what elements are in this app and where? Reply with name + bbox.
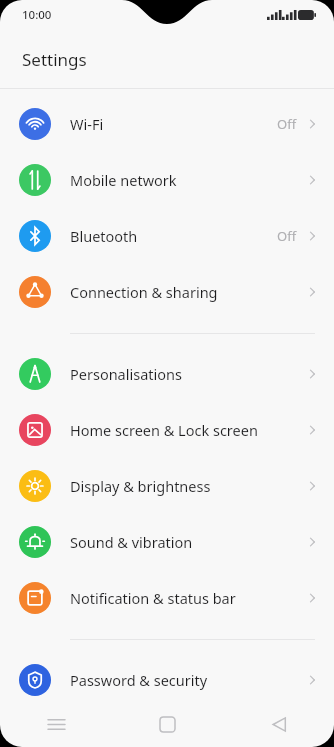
button[interactable]: Home — [112, 701, 223, 747]
staticText: Personalisations — [70, 364, 308, 384]
button[interactable]: Notification & status bar — [0, 570, 334, 626]
staticText: Home screen & Lock screen — [70, 420, 308, 440]
button[interactable]: Home screen & Lock screen — [0, 402, 334, 458]
staticText: Display & brightness — [70, 476, 308, 496]
staticText: Notification & status bar — [70, 588, 308, 608]
button[interactable]: Password & security — [0, 652, 334, 708]
staticText: Off — [277, 227, 297, 245]
staticText: Password & security — [70, 670, 308, 690]
staticText: Settings — [22, 48, 87, 71]
staticText: Connection & sharing — [70, 282, 308, 302]
staticText: Mobile network — [70, 170, 308, 190]
button[interactable]: Back — [223, 701, 334, 747]
staticText: Bluetooth — [70, 226, 277, 246]
button[interactable]: Sound & vibration — [0, 514, 334, 570]
button[interactable]: Wi-Fi — [0, 96, 334, 152]
button[interactable]: Display & brightness — [0, 458, 334, 514]
button[interactable]: Bluetooth — [0, 208, 334, 264]
staticText: Sound & vibration — [70, 532, 308, 552]
button[interactable]: Recent apps — [0, 701, 112, 747]
staticText: Off — [277, 115, 297, 133]
button[interactable]: Connection & sharing — [0, 264, 334, 320]
button[interactable]: Mobile network — [0, 152, 334, 208]
button[interactable]: Personalisations — [0, 346, 334, 402]
staticText: Wi-Fi — [70, 114, 277, 134]
staticText: 10:00 — [22, 7, 52, 23]
